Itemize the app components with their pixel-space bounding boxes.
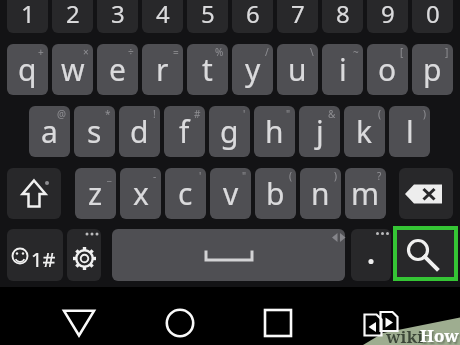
button[interactable]: e <box>97 44 138 95</box>
button[interactable]: 6 <box>232 0 273 33</box>
button[interactable]: o <box>367 44 408 95</box>
staticText: j <box>316 111 324 152</box>
staticText: x <box>133 173 149 214</box>
staticText: / <box>265 45 269 59</box>
button[interactable]: f <box>164 106 205 157</box>
button[interactable] <box>162 305 200 341</box>
button[interactable] <box>7 168 61 219</box>
button[interactable]: g <box>209 106 250 157</box>
staticText: ( <box>289 169 292 183</box>
staticText: l <box>406 111 414 152</box>
staticText: " <box>286 107 291 121</box>
button[interactable]: m <box>345 168 386 219</box>
button[interactable] <box>60 305 100 341</box>
button[interactable]: b <box>255 168 296 219</box>
button[interactable]: h <box>254 106 295 157</box>
staticText: ~ <box>353 45 359 59</box>
staticText: v <box>223 173 239 214</box>
button[interactable] <box>358 305 400 341</box>
staticText: @ <box>57 107 66 121</box>
staticText: a <box>41 111 58 152</box>
button[interactable]: 0 <box>412 0 453 33</box>
button[interactable]: p <box>412 44 453 95</box>
staticText: " <box>242 169 247 183</box>
staticText: m <box>351 173 380 214</box>
staticText: ' <box>243 107 246 121</box>
staticText: w <box>61 49 85 90</box>
button[interactable]: z <box>75 168 116 219</box>
staticText: o <box>378 49 397 90</box>
staticText: c <box>178 173 193 214</box>
button[interactable]: j <box>299 106 340 157</box>
staticText: ( <box>378 107 381 121</box>
staticText: 2 <box>66 0 80 30</box>
staticText: ! <box>153 107 156 121</box>
staticText: z <box>88 173 103 214</box>
staticText: t <box>202 49 213 90</box>
staticText: k <box>356 111 373 152</box>
button[interactable]: 8 <box>322 0 363 33</box>
staticText: ] <box>445 45 449 59</box>
button[interactable]: u <box>277 44 318 95</box>
staticText: + <box>38 45 44 59</box>
staticText: _ <box>107 169 112 183</box>
staticText: f <box>179 111 190 152</box>
button[interactable]: 2 <box>52 0 93 33</box>
staticText: 4 <box>156 0 170 30</box>
button[interactable]: v <box>210 168 251 219</box>
button[interactable]: x <box>120 168 161 219</box>
staticText: × <box>83 45 89 59</box>
staticText: y <box>245 49 261 90</box>
button[interactable]: 3 <box>97 0 138 33</box>
staticText: b <box>266 173 285 214</box>
staticText: 5 <box>201 0 215 30</box>
staticText: - <box>153 169 157 183</box>
button[interactable]: r <box>142 44 183 95</box>
button[interactable] <box>399 168 453 219</box>
staticText: 0 <box>426 0 440 30</box>
staticText: q <box>18 49 37 90</box>
button[interactable]: k <box>344 106 385 157</box>
button[interactable] <box>7 229 63 281</box>
staticText: n <box>311 173 330 214</box>
staticText: = <box>173 45 179 59</box>
button[interactable]: l <box>389 106 430 157</box>
staticText: e <box>109 49 126 90</box>
staticText: u <box>288 49 307 90</box>
button[interactable]: a <box>29 106 70 157</box>
staticText: wiki <box>386 325 424 345</box>
staticText: 8 <box>336 0 350 30</box>
staticText: & <box>328 107 336 121</box>
button[interactable] <box>395 229 455 281</box>
button[interactable]: y <box>232 44 273 95</box>
staticText: 3 <box>111 0 125 30</box>
button[interactable]: 7 <box>277 0 318 33</box>
staticText: g <box>220 111 239 152</box>
staticText: ) <box>334 169 337 183</box>
button[interactable]: 5 <box>187 0 228 33</box>
button[interactable]: w <box>52 44 93 95</box>
staticText: h <box>265 111 284 152</box>
staticText: * <box>105 107 111 121</box>
button[interactable] <box>67 229 101 281</box>
button[interactable]: n <box>300 168 341 219</box>
staticText: 1 <box>21 0 35 30</box>
button[interactable]: 9 <box>367 0 408 33</box>
button[interactable]: i <box>322 44 363 95</box>
button[interactable] <box>351 229 391 281</box>
staticText: d <box>130 111 149 152</box>
button[interactable] <box>260 305 296 341</box>
button[interactable]: d <box>119 106 160 157</box>
button[interactable]: q <box>7 44 48 95</box>
button[interactable] <box>112 229 345 281</box>
button[interactable]: t <box>187 44 228 95</box>
button[interactable]: 4 <box>142 0 183 33</box>
staticText: ? <box>377 169 382 183</box>
staticText: 1# <box>31 246 56 273</box>
button[interactable]: s <box>74 106 115 157</box>
staticText: 7 <box>291 0 305 30</box>
staticText: ÷ <box>128 45 134 59</box>
button[interactable]: c <box>165 168 206 219</box>
staticText: s <box>87 111 102 152</box>
button[interactable]: 1 <box>7 0 48 33</box>
